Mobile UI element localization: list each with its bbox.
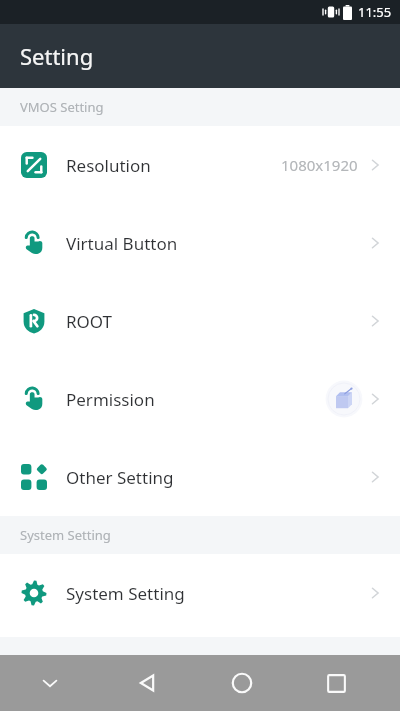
button[interactable]: System Setting: [0, 554, 400, 632]
staticText: ROOT: [66, 310, 113, 333]
button[interactable]: Resolution: [0, 126, 400, 204]
staticText: Other Setting: [66, 466, 174, 489]
staticText: 11:55: [358, 3, 392, 21]
button[interactable]: Hide keyboard: [0, 655, 100, 711]
staticText: Permission: [66, 388, 155, 411]
staticText: Virtual Button: [66, 232, 178, 255]
staticText: Setting: [20, 41, 94, 71]
staticText: Resolution: [66, 154, 151, 177]
staticText: VMOS Setting: [20, 98, 104, 116]
staticText: System Setting: [20, 526, 111, 544]
button[interactable]: Virtual Button: [0, 204, 400, 282]
button[interactable]: Recent apps: [289, 655, 384, 711]
button[interactable]: Permission: [0, 360, 400, 438]
button[interactable]: ROOT: [0, 282, 400, 360]
staticText: System Setting: [66, 582, 185, 605]
button[interactable]: Home: [194, 655, 289, 711]
button[interactable]: Other Setting: [0, 438, 400, 516]
button[interactable]: Back: [100, 655, 194, 711]
staticText: 1080x1920: [281, 155, 358, 175]
